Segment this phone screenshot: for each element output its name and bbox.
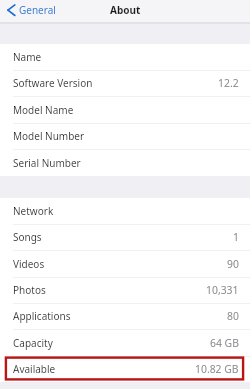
staticText: 90 xyxy=(227,257,239,271)
staticText: About xyxy=(110,3,141,17)
button[interactable]: Applications xyxy=(0,303,250,329)
button[interactable]: Model Number xyxy=(0,123,250,149)
staticText: Serial Number xyxy=(13,156,81,170)
button[interactable]: Network xyxy=(0,198,250,224)
button[interactable]: Videos xyxy=(0,251,250,277)
button[interactable]: Software Version xyxy=(0,70,250,96)
staticText: Model Name xyxy=(13,103,74,117)
button[interactable]: Capacity xyxy=(0,330,250,356)
staticText: Name xyxy=(13,50,42,64)
button[interactable]: Back to General xyxy=(0,0,62,21)
button[interactable]: Name xyxy=(0,44,250,70)
staticText: Videos xyxy=(13,257,45,271)
staticText: 10,331 xyxy=(206,283,239,297)
staticText: Photos xyxy=(13,283,46,297)
button[interactable]: Serial Number xyxy=(0,150,250,176)
button[interactable]: Photos xyxy=(0,277,250,303)
staticText: Network xyxy=(13,204,54,218)
staticText: Applications xyxy=(13,309,71,323)
staticText: Software Version xyxy=(13,76,93,90)
staticText: Model Number xyxy=(13,129,85,143)
staticText: 64 GB xyxy=(210,336,239,350)
button[interactable]: Model Name xyxy=(0,97,250,123)
staticText: 80 xyxy=(227,309,239,323)
staticText: Available xyxy=(13,362,56,376)
staticText: General xyxy=(19,3,56,17)
staticText: Songs xyxy=(13,230,42,244)
staticText: 1 xyxy=(233,230,239,244)
button[interactable]: Songs xyxy=(0,224,250,250)
staticText: 12.2 xyxy=(218,76,239,90)
staticText: 10.82 GB xyxy=(195,362,239,376)
staticText: Capacity xyxy=(13,336,53,350)
button[interactable]: Available xyxy=(0,356,250,382)
